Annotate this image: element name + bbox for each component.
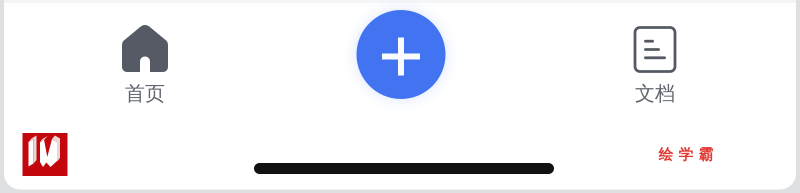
- button[interactable]: 文档: [595, 12, 715, 112]
- staticText: 文档: [635, 81, 675, 106]
- button[interactable]: 首页: [85, 12, 205, 112]
- staticText: 绘: [658, 145, 673, 163]
- button[interactable]: 新建: [351, 4, 451, 104]
- staticText: 学: [678, 145, 693, 163]
- staticText: 霸: [698, 145, 713, 163]
- staticText: 首页: [125, 81, 165, 106]
